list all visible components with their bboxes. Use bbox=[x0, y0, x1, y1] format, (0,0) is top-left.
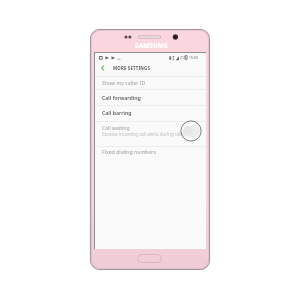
button[interactable]: Show my caller ID bbox=[95, 76, 206, 89]
staticText: 21% bbox=[180, 55, 187, 60]
button[interactable]: Fixed dialing numbers bbox=[95, 146, 206, 157]
button[interactable]: Call barring bbox=[95, 105, 206, 119]
other: Navigate up bbox=[99, 64, 107, 72]
staticText: Call forwarding bbox=[102, 94, 141, 101]
button[interactable]: Call forwarding bbox=[95, 89, 206, 105]
button[interactable]: Call waiting toggle bbox=[180, 120, 202, 142]
staticText: Call barring bbox=[102, 109, 132, 116]
staticText: Show my caller ID bbox=[102, 79, 146, 86]
staticText: 15:00 bbox=[189, 55, 198, 60]
button[interactable]: Call waiting bbox=[95, 121, 206, 147]
button[interactable]: Navigate up bbox=[95, 60, 206, 75]
staticText: MORE SETTINGS bbox=[113, 65, 150, 71]
staticText: Fixed dialing numbers bbox=[102, 148, 157, 155]
staticText: Call waiting bbox=[102, 125, 130, 132]
staticText: SAMSUNG bbox=[135, 41, 168, 49]
button[interactable]: Home bbox=[137, 254, 162, 263]
staticText: Receive incoming call alerts during call… bbox=[102, 131, 185, 137]
